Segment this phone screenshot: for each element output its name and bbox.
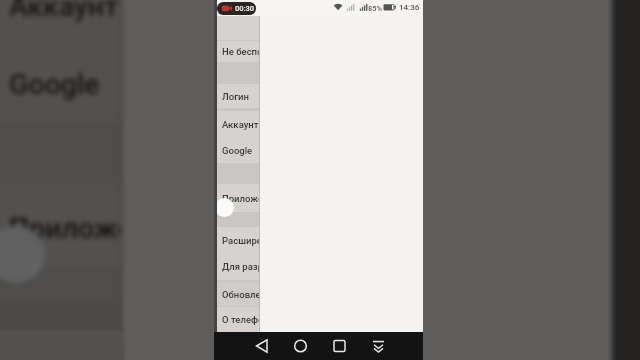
button[interactable]: Расширенные [217, 227, 259, 253]
staticText: Google [222, 145, 253, 156]
button[interactable]: Приложения [217, 184, 259, 212]
staticText: О телефоне [222, 314, 259, 325]
button[interactable]: 00:30 [217, 2, 256, 15]
staticText: Для разработчиков [222, 261, 259, 272]
button[interactable] [364, 332, 393, 360]
staticText: Обновление [222, 289, 259, 300]
staticText: Логин [222, 91, 250, 102]
button[interactable]: Приложения [0, 184, 120, 268]
staticText: Приложения [9, 211, 120, 244]
staticText: 00:30 [235, 4, 255, 13]
staticText: Google [9, 67, 102, 100]
button[interactable]: Google [217, 137, 259, 163]
staticText: 14:36 [399, 3, 420, 12]
staticText: Аккаунты [9, 0, 120, 22]
button[interactable]: Для разработчиков [217, 253, 259, 280]
button[interactable] [248, 332, 277, 360]
staticText: 85% [368, 4, 382, 13]
button[interactable]: Обновление [217, 282, 259, 306]
button[interactable]: Аккаунты [217, 111, 259, 137]
button[interactable]: Google [0, 43, 120, 121]
button[interactable] [325, 332, 354, 360]
button[interactable]: Не беспокоить [217, 41, 259, 62]
button[interactable]: Логин [217, 84, 259, 108]
staticText: Не беспокоить [222, 46, 259, 57]
button[interactable]: О телефоне [217, 307, 259, 332]
staticText: Аккаунты [222, 119, 259, 130]
staticText: Расширенные [222, 235, 259, 246]
staticText: Приложения [222, 193, 259, 204]
button[interactable] [286, 332, 315, 360]
button[interactable]: Аккаунты [0, 0, 120, 43]
